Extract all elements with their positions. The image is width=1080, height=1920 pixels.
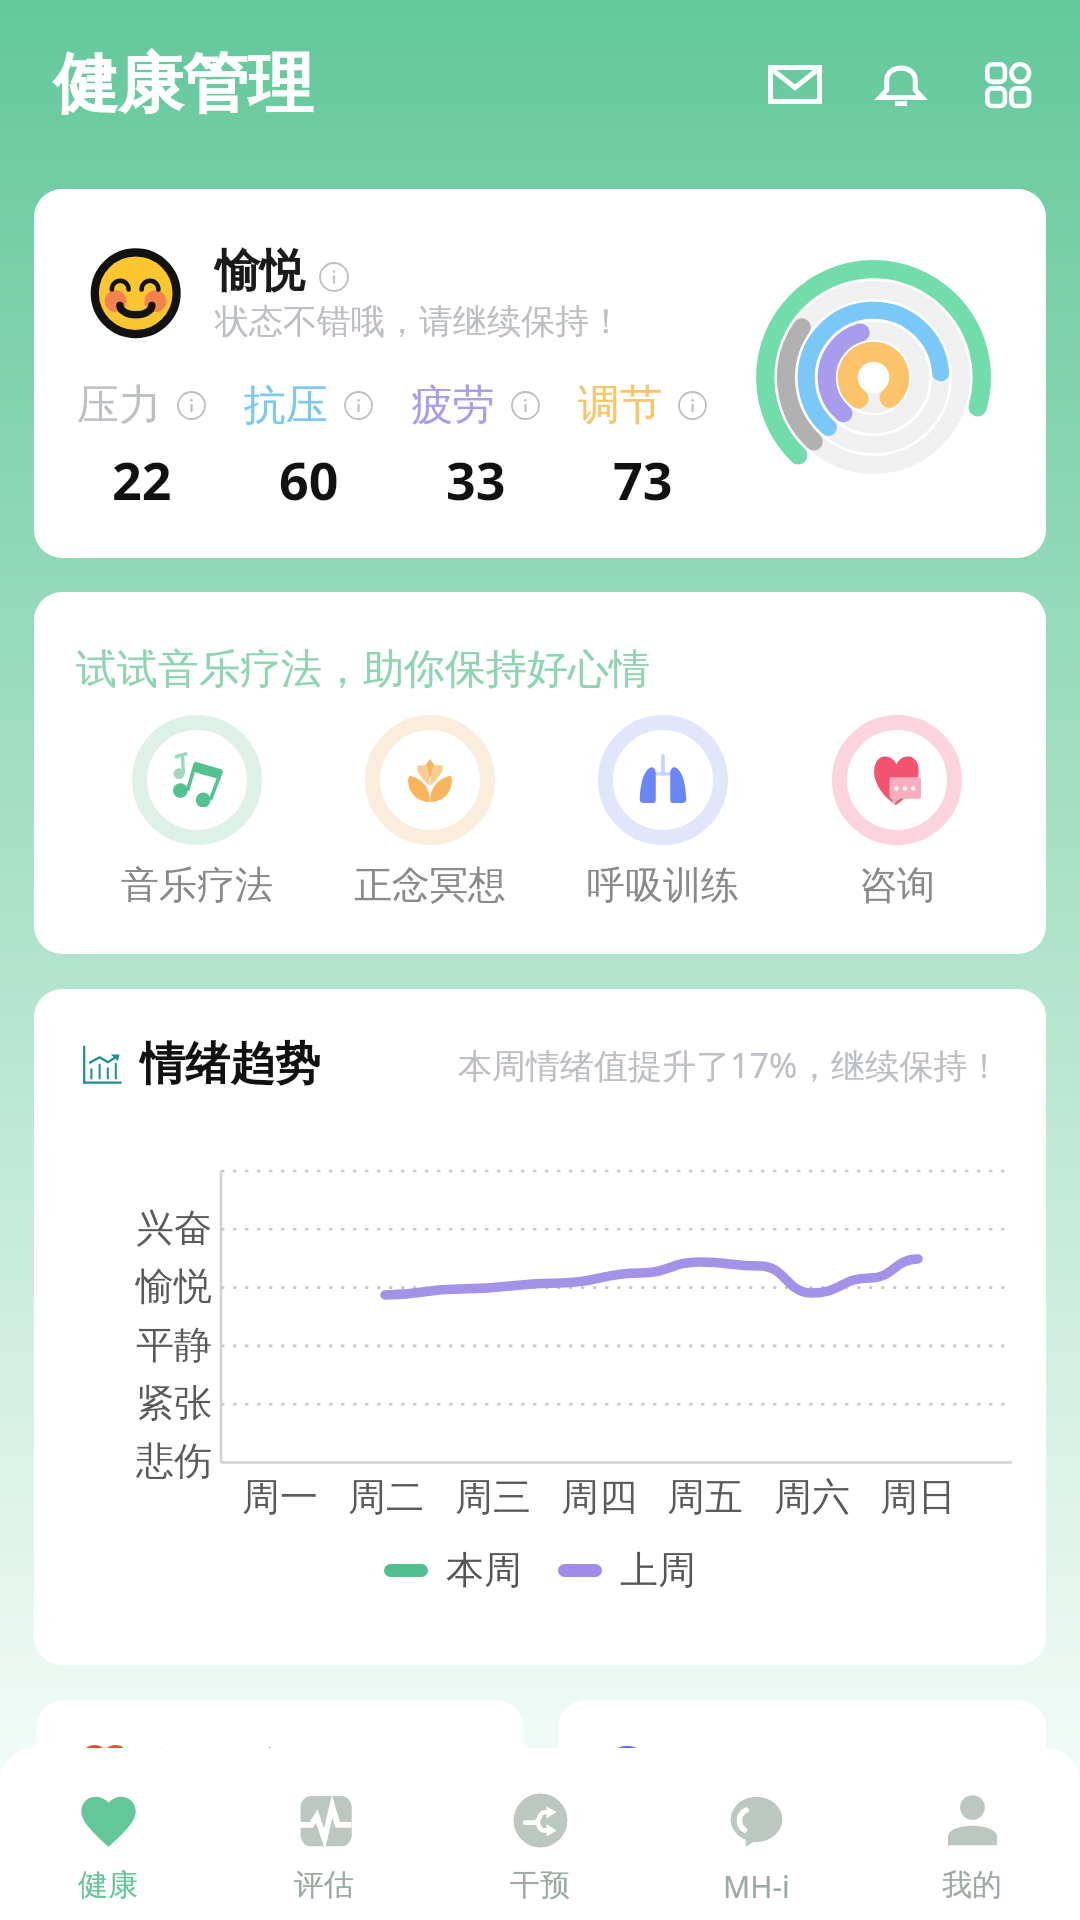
staticText: 愉悦 (215, 243, 305, 300)
staticText: 抗压 (244, 379, 328, 432)
staticText: MH-i (723, 1866, 790, 1907)
button[interactable]: 睡眠记录 (558, 1700, 1046, 1840)
button[interactable]: 健康 (0, 1793, 216, 1920)
staticText: 压力 (77, 379, 161, 432)
staticText: 周一 (242, 1473, 318, 1521)
button[interactable]: 抗压 (225, 379, 392, 515)
staticText: 愉悦 (136, 1262, 212, 1310)
button[interactable]: 心理档案 (36, 1700, 524, 1840)
staticText: 平静 (136, 1321, 212, 1369)
staticText: 周日 (880, 1473, 956, 1521)
staticText: 上周 (620, 1546, 696, 1594)
button[interactable]: 疲劳 (392, 379, 559, 515)
staticText: 健康 (78, 1866, 138, 1904)
staticText: 调节 (578, 379, 662, 432)
staticText: 正念冥想 (354, 861, 506, 909)
button[interactable]: 压力 (58, 379, 225, 515)
staticText: 我的 (942, 1866, 1002, 1904)
button[interactable]: 调节 (559, 379, 726, 515)
staticText: 评估 (294, 1866, 354, 1904)
button[interactable]: 评估 (216, 1793, 432, 1920)
staticText: 周五 (667, 1473, 743, 1521)
staticText: 周六 (774, 1473, 850, 1521)
staticText: 疲劳 (411, 379, 495, 432)
staticText: 周三 (455, 1473, 531, 1521)
staticText: 干预 (510, 1866, 570, 1904)
staticText: 咨询 (859, 861, 935, 909)
staticText: 33 (446, 444, 506, 515)
button[interactable]: All apps (965, 42, 1049, 126)
button[interactable]: 音乐疗法 (80, 715, 313, 909)
staticText: 兴奋 (136, 1204, 212, 1252)
staticText: 紧张 (136, 1379, 212, 1427)
button[interactable]: 咨询 (780, 715, 1014, 909)
staticText: 悲伤 (136, 1437, 212, 1485)
button[interactable]: 我的 (864, 1793, 1080, 1920)
staticText: 音乐疗法 (121, 861, 273, 909)
staticText: 周二 (348, 1473, 424, 1521)
staticText: 状态不错哦，请继续保持！ (215, 300, 623, 343)
button[interactable]: 呼吸训练 (546, 715, 780, 909)
button[interactable]: MH-i (648, 1793, 864, 1920)
staticText: 呼吸训练 (587, 861, 739, 909)
staticText: 试试音乐疗法，助你保持好心情 (76, 644, 650, 696)
staticText: 73 (613, 444, 673, 515)
staticText: 健康管理 (53, 43, 313, 125)
button[interactable]: 干预 (432, 1793, 648, 1920)
button[interactable]: Notifications (859, 42, 943, 126)
staticText: 周四 (561, 1473, 637, 1521)
staticText: 22 (112, 444, 172, 515)
button[interactable]: 正念冥想 (313, 715, 546, 909)
staticText: 本周 (446, 1546, 522, 1594)
staticText: 60 (279, 444, 339, 515)
button[interactable]: Messages (753, 42, 837, 126)
staticText: 本周情绪值提升了17%，继续保持！ (458, 1042, 1002, 1088)
staticText: 情绪趋势 (140, 1036, 320, 1093)
